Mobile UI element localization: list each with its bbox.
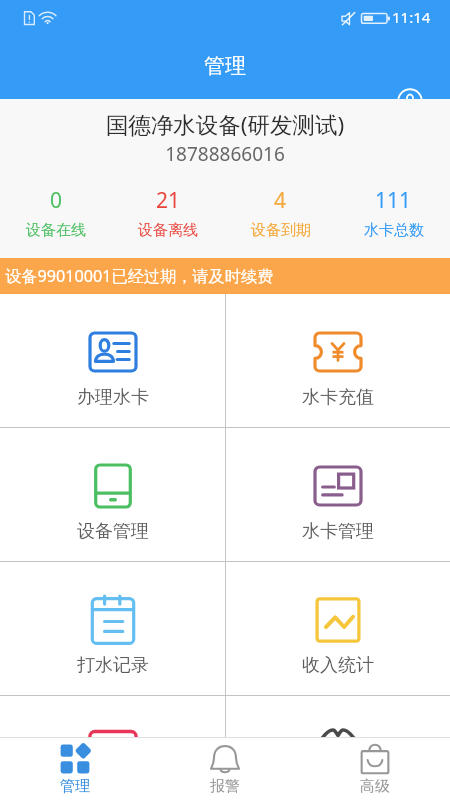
- staticText: 办理水卡: [77, 386, 149, 409]
- staticText: 设备管理: [77, 520, 149, 543]
- button[interactable]: Account: [389, 80, 431, 122]
- staticText: 18788866016: [0, 141, 450, 167]
- staticText: 0: [50, 186, 63, 215]
- button[interactable]: 111: [337, 183, 450, 243]
- button[interactable]: 办理水卡: [0, 294, 225, 427]
- button[interactable]: 21: [112, 183, 224, 243]
- staticText: 111: [375, 186, 412, 215]
- button[interactable]: 4: [224, 183, 337, 243]
- button[interactable]: 高级: [300, 738, 450, 800]
- staticText: 水卡总数: [364, 221, 424, 240]
- staticText: 管理: [60, 777, 90, 796]
- staticText: 设备在线: [26, 221, 86, 240]
- staticText: 国德净水设备(研发测试): [0, 109, 450, 140]
- staticText: 水卡充值: [302, 386, 374, 409]
- staticText: 设备到期: [251, 221, 311, 240]
- button[interactable]: 设备99010001已经过期，请及时续费: [0, 258, 450, 294]
- button[interactable]: 水卡管理: [225, 428, 450, 561]
- button[interactable]: 收入统计: [225, 562, 450, 695]
- button[interactable]: 报警: [150, 738, 300, 800]
- button[interactable]: 设备维护: [0, 696, 225, 737]
- staticText: 设备99010001已经过期，请及时续费: [5, 265, 274, 287]
- staticText: 4: [274, 186, 287, 215]
- button[interactable]: 0: [0, 183, 112, 243]
- staticText: 设备离线: [138, 221, 198, 240]
- button[interactable]: 打水记录: [0, 562, 225, 695]
- button[interactable]: 管理: [0, 738, 150, 800]
- staticText: 管理: [204, 53, 246, 79]
- button[interactable]: 报警记录: [225, 696, 450, 737]
- staticText: 11:14: [392, 7, 431, 27]
- button[interactable]: 水卡充值: [225, 294, 450, 427]
- staticText: 打水记录: [77, 654, 149, 677]
- staticText: 高级: [360, 777, 390, 796]
- staticText: 21: [156, 186, 181, 215]
- staticText: 收入统计: [302, 654, 374, 677]
- staticText: 水卡管理: [302, 520, 374, 543]
- staticText: 报警: [210, 777, 240, 796]
- button[interactable]: 设备管理: [0, 428, 225, 561]
